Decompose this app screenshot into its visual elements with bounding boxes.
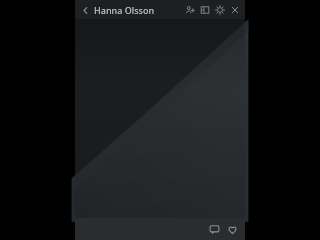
staticText: Hanna Olsson — [94, 4, 182, 16]
button[interactable]: Close — [227, 2, 242, 17]
button[interactable]: Add person — [182, 2, 197, 17]
button[interactable]: Back — [78, 3, 92, 17]
button[interactable]: Effects — [212, 2, 227, 17]
button[interactable]: Gallery — [197, 2, 212, 17]
button[interactable]: Like — [223, 220, 241, 238]
button[interactable]: Comment — [205, 220, 223, 238]
